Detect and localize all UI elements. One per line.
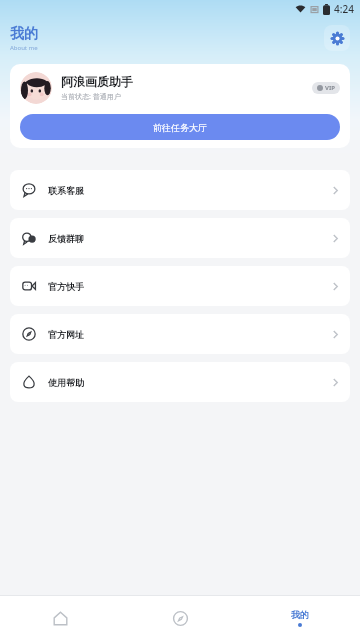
- button[interactable]: 使用帮助: [10, 362, 350, 402]
- button[interactable]: 我的: [240, 596, 360, 640]
- button[interactable]: 官方网址: [10, 314, 350, 354]
- staticText: 我的: [10, 25, 38, 43]
- staticText: 阿浪画质助手: [61, 74, 133, 89]
- staticText: 反馈群聊: [48, 233, 84, 244]
- staticText: About me: [10, 44, 38, 52]
- button[interactable]: Home: [0, 596, 120, 640]
- staticText: 官方快手: [48, 281, 84, 292]
- button[interactable]: 反馈群聊: [10, 218, 350, 258]
- staticText: 官方网址: [48, 329, 84, 340]
- button[interactable]: 官方快手: [10, 266, 350, 306]
- button[interactable]: 联系客服: [10, 170, 350, 210]
- staticText: 联系客服: [48, 185, 84, 196]
- button[interactable]: Explore: [120, 596, 240, 640]
- staticText: VIP: [325, 84, 335, 92]
- staticText: 前往任务大厅: [153, 122, 207, 133]
- staticText: 使用帮助: [48, 377, 84, 388]
- staticText: 当前状态: 普通用户: [61, 92, 121, 102]
- button[interactable]: 前往任务大厅: [20, 114, 340, 140]
- staticText: 4:24: [334, 2, 354, 16]
- button[interactable]: Settings: [324, 25, 350, 51]
- staticText: 我的: [291, 609, 309, 620]
